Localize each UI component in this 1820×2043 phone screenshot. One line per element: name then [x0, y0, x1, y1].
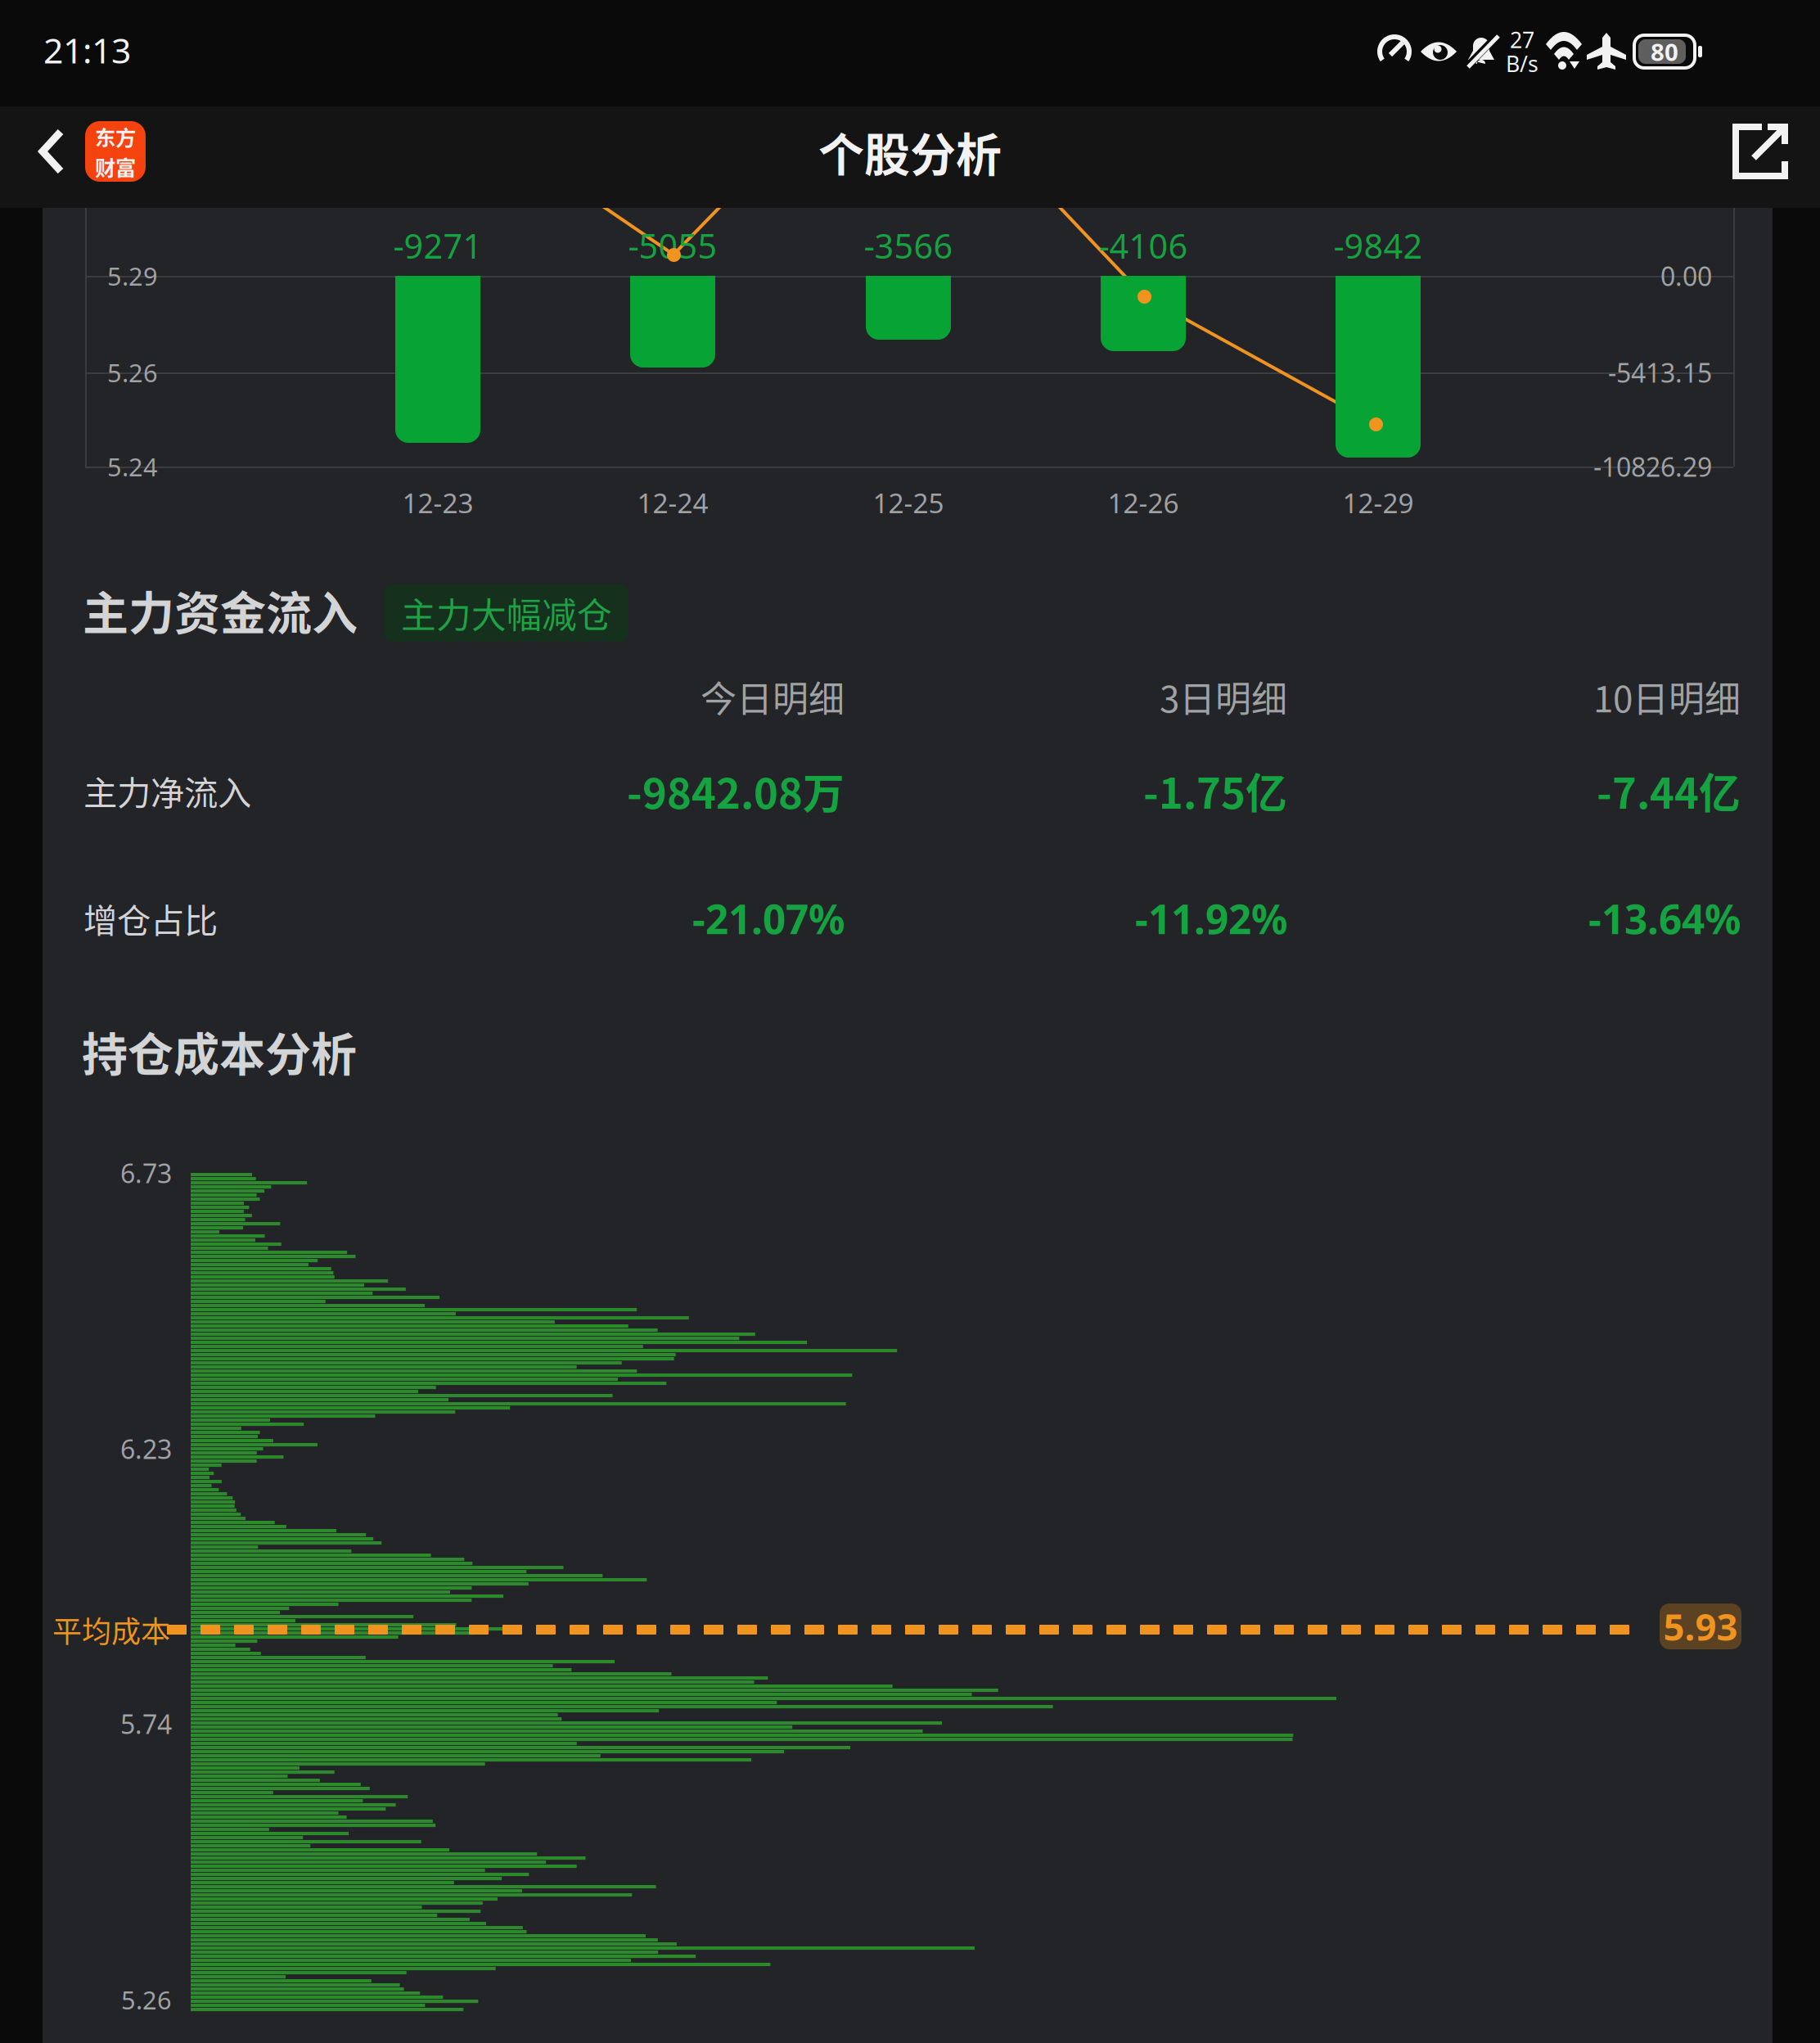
staticText: 5.29	[107, 259, 158, 292]
staticText: 个股分析	[818, 118, 1002, 185]
staticText: 财富	[95, 151, 136, 181]
staticText: 12-23	[402, 484, 473, 521]
staticText: 80	[1651, 36, 1678, 68]
staticText: -11.92%	[1135, 892, 1287, 945]
staticText: 5.26	[121, 1983, 172, 2016]
staticText: 6.23	[120, 1431, 172, 1466]
staticText: -21.07%	[692, 892, 845, 945]
staticText: -10826.29	[1593, 449, 1712, 484]
staticText: -9842.08万	[627, 761, 845, 821]
staticText: 27	[1510, 25, 1534, 54]
staticText: 今日明细	[701, 670, 845, 723]
staticText: -9271	[393, 223, 482, 268]
staticText: 12-24	[637, 484, 708, 521]
button[interactable]: Share	[1699, 101, 1820, 201]
staticText: 主力大幅减仓	[401, 588, 612, 638]
staticText: -1.75亿	[1143, 761, 1287, 821]
staticText: -3566	[864, 223, 953, 268]
staticText: 10日明细	[1593, 670, 1741, 723]
staticText: 12-26	[1108, 484, 1179, 521]
staticText: -7.44亿	[1597, 761, 1741, 821]
staticText: 5.24	[107, 450, 158, 483]
staticText: 主力资金流入	[83, 577, 358, 643]
button[interactable]: Back	[13, 101, 218, 201]
staticText: 12-29	[1342, 484, 1414, 521]
staticText: B/s	[1506, 49, 1538, 78]
staticText: 3日明细	[1160, 670, 1287, 723]
staticText: 主力净流入	[83, 766, 251, 815]
staticText: 5.26	[107, 356, 158, 389]
staticText: 5.93	[1663, 1602, 1738, 1651]
staticText: 平均成本	[52, 1608, 170, 1651]
staticText: 东方	[95, 121, 136, 151]
staticText: -5055	[628, 223, 717, 268]
staticText: 0.00	[1660, 258, 1712, 293]
staticText: 增仓占比	[83, 894, 218, 943]
staticText: -5413.15	[1608, 355, 1712, 390]
staticText: 21:13	[43, 27, 131, 73]
staticText: -9842	[1333, 223, 1423, 268]
staticText: -13.64%	[1588, 892, 1741, 945]
staticText: 5.74	[120, 1706, 172, 1741]
staticText: 持仓成本分析	[82, 1018, 357, 1084]
staticText: -4106	[1099, 223, 1188, 268]
staticText: 12-25	[873, 484, 944, 521]
staticText: 6.73	[120, 1156, 172, 1190]
